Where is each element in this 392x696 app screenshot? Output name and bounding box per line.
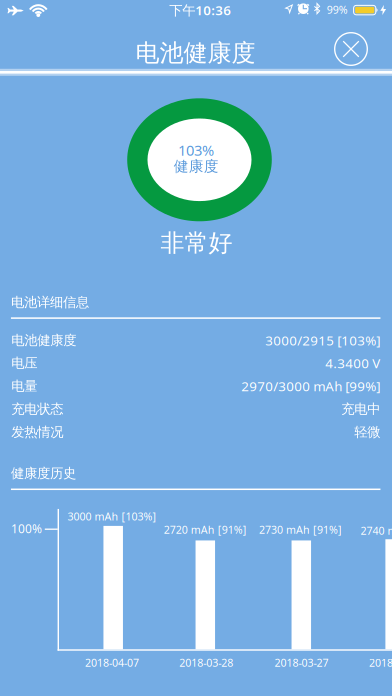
staticText: 电压 [11, 355, 37, 371]
staticText: 非常好 [161, 228, 233, 258]
staticText: 电池健康度 [135, 38, 255, 68]
staticText: 103% [178, 140, 214, 160]
staticText: 2018-03-28 [179, 655, 233, 670]
staticText: 2018-03-26 [369, 655, 392, 670]
staticText: 3000/2915 [103%] [265, 331, 380, 349]
staticText: 99% [327, 3, 348, 17]
staticText: 100% [11, 521, 42, 537]
staticText: 2730 mAh [91%] [259, 522, 342, 537]
staticText: 下午10:36 [169, 1, 231, 19]
staticText: 电池详细信息 [11, 294, 89, 310]
staticText: 2018-03-27 [274, 655, 328, 670]
staticText: 电量 [11, 378, 37, 394]
staticText: 电池健康度 [11, 332, 76, 348]
staticText: 4.3400 V [325, 354, 380, 372]
staticText: 2720 mAh [91%] [164, 522, 247, 537]
staticText: 健康度历史 [11, 465, 76, 481]
staticText: 健康度 [174, 157, 219, 175]
button[interactable]: Close [334, 32, 368, 66]
staticText: 2018-04-07 [85, 655, 139, 670]
staticText: 2970/3000 mAh [99%] [241, 377, 380, 395]
staticText: 3000 mAh [103%] [67, 509, 156, 523]
staticText: 充电中 [341, 401, 380, 417]
staticText: 充电状态 [11, 401, 63, 417]
staticText: 发热情况 [11, 424, 63, 440]
staticText: 2740 mAh [91%] [360, 523, 392, 538]
staticText: 轻微 [354, 424, 380, 440]
